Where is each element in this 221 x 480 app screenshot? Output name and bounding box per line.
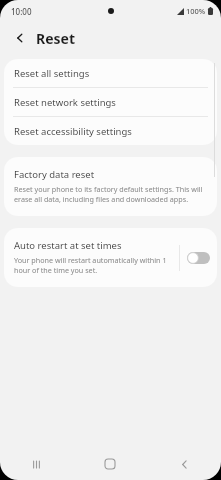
staticText: 100% bbox=[186, 6, 206, 16]
staticText: 10:00 bbox=[11, 6, 32, 17]
button[interactable]: Reset accessibility settings bbox=[4, 117, 217, 145]
button[interactable]: Auto restart at set times toggle bbox=[180, 240, 217, 276]
staticText: Reset your phone to its factory default … bbox=[14, 184, 205, 204]
staticText: Reset accessibility settings bbox=[14, 125, 132, 138]
staticText: Reset bbox=[36, 29, 76, 48]
button[interactable]: Back bbox=[147, 448, 221, 480]
button[interactable]: Recents bbox=[0, 448, 73, 480]
button[interactable]: Factory data reset bbox=[4, 157, 217, 216]
button[interactable]: Home bbox=[73, 448, 147, 480]
staticText: Reset network settings bbox=[14, 96, 116, 109]
staticText: Reset all settings bbox=[14, 67, 90, 80]
button[interactable]: Back bbox=[10, 28, 30, 48]
staticText: Factory data reset bbox=[14, 168, 95, 181]
staticText: Your phone will restart automatically wi… bbox=[14, 255, 173, 275]
staticText: Auto restart at set times bbox=[14, 239, 122, 252]
button[interactable]: Reset all settings bbox=[4, 59, 217, 87]
button[interactable]: Auto restart at set times bbox=[4, 228, 179, 287]
button[interactable]: Reset network settings bbox=[4, 88, 217, 116]
